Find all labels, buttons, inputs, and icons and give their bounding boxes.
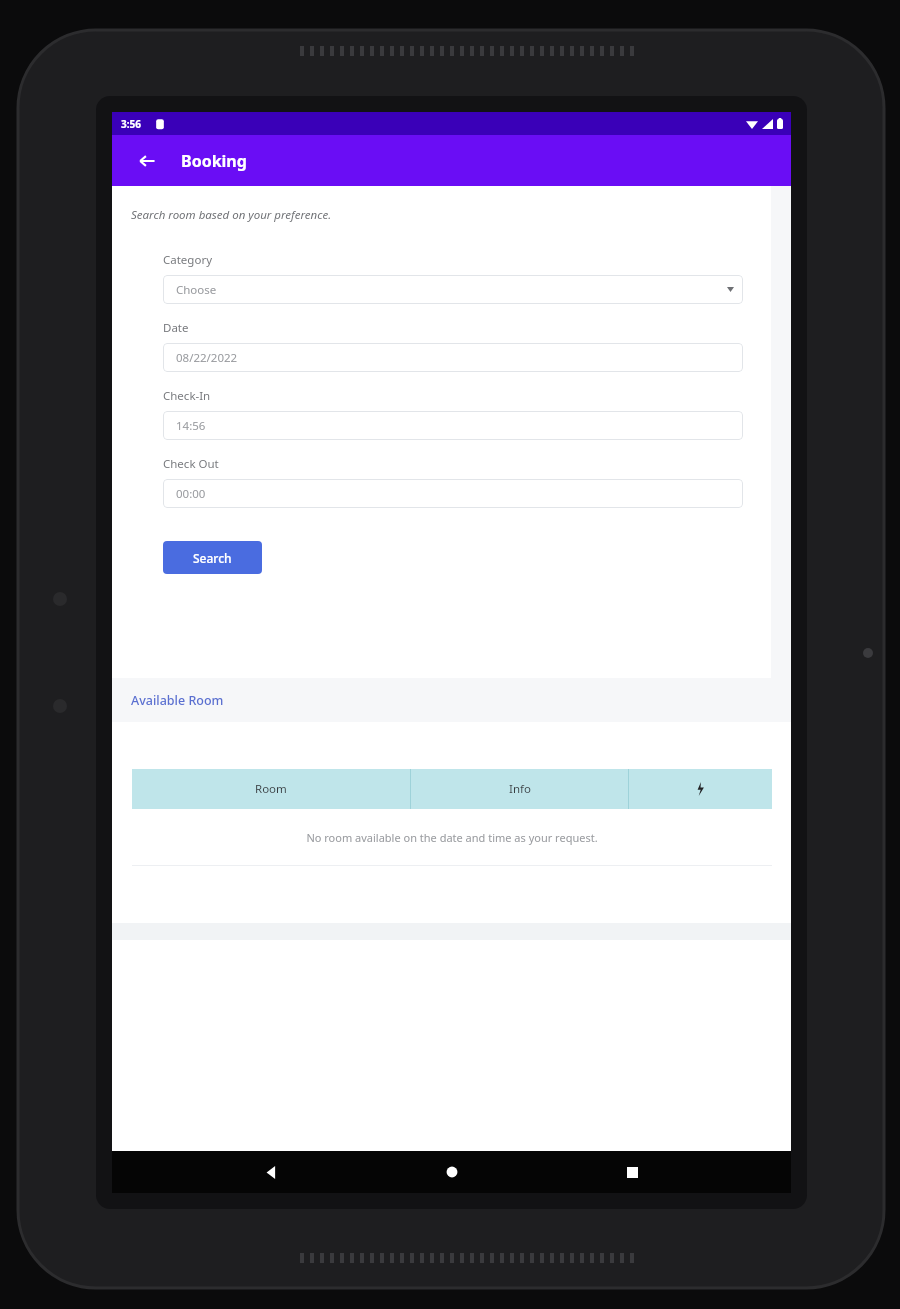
staticText: Date — [163, 320, 189, 336]
staticText: 3:56 — [121, 117, 141, 131]
staticText: Room — [255, 781, 287, 797]
button[interactable]: 14:56 — [163, 411, 743, 440]
button[interactable]: Info — [411, 769, 628, 809]
button[interactable]: Choose — [163, 275, 743, 304]
staticText: Search room based on your preference. — [131, 207, 332, 223]
staticText: Info — [509, 781, 531, 797]
staticText: Check-In — [163, 388, 211, 404]
button[interactable]: Recent apps — [610, 1151, 654, 1193]
staticText: Booking — [181, 150, 247, 172]
button[interactable]: Room — [132, 769, 410, 809]
staticText: 08/22/2022 — [176, 350, 238, 366]
staticText: Choose — [176, 282, 217, 298]
button[interactable]: 08/22/2022 — [163, 343, 743, 372]
button[interactable]: Search — [163, 541, 262, 574]
staticText: Check Out — [163, 456, 219, 472]
button[interactable]: Actions — [629, 769, 772, 809]
staticText: 14:56 — [176, 418, 206, 434]
staticText: Available Room — [131, 692, 224, 709]
staticText: Search — [193, 550, 232, 566]
button[interactable]: Home — [430, 1151, 474, 1193]
button[interactable]: 00:00 — [163, 479, 743, 508]
staticText: No room available on the date and time a… — [306, 830, 598, 845]
button[interactable]: Back — [130, 144, 164, 178]
staticText: Category — [163, 252, 213, 268]
button[interactable]: Back — [249, 1151, 293, 1193]
staticText: 00:00 — [176, 486, 206, 502]
